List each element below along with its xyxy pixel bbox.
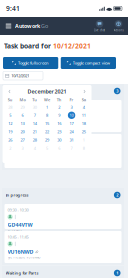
staticText: 2 — [116, 192, 118, 198]
staticText: 30 — [57, 137, 61, 142]
staticText: 22 — [45, 129, 49, 134]
staticText: Th — [57, 97, 62, 102]
staticText: Live chat — [94, 28, 105, 32]
staticText: 09:30 - 10:30 — [7, 207, 28, 212]
staticText: We — [44, 97, 50, 102]
staticText: 3 — [21, 145, 23, 151]
staticText: 21 — [33, 129, 37, 134]
staticText: Autowork — [15, 22, 40, 30]
staticText: Mo — [19, 97, 25, 102]
staticText: 11 — [82, 113, 86, 118]
staticText: 30 — [33, 104, 37, 110]
staticText: 25 — [82, 129, 86, 134]
staticText: 16 — [57, 121, 61, 126]
staticText: Go — [40, 22, 48, 30]
staticText: 10/12/2021 — [53, 42, 91, 50]
staticText: 08:00 - 09:00 — [7, 103, 28, 108]
staticText: 9:41 — [6, 4, 20, 13]
staticText: VU16NWD — [7, 248, 33, 255]
staticText: 4 — [34, 145, 36, 151]
staticText: 24 — [70, 129, 74, 134]
staticText: 10:45 - 11:45 — [7, 234, 28, 239]
staticText: 09:15 - 10:00 — [7, 137, 28, 142]
staticText: 12 — [8, 121, 12, 126]
button[interactable]: Toggle compact view — [61, 57, 116, 69]
staticText: Waiting for Parts — [5, 270, 38, 276]
staticText: 15 — [45, 121, 49, 126]
staticText: Toggle compact view — [73, 60, 110, 66]
staticText: Fit 2x Tyres — [7, 229, 21, 232]
staticText: 6 — [58, 145, 60, 151]
staticText: LR19HXT — [7, 117, 30, 124]
staticText: 27 — [20, 137, 24, 142]
button[interactable]: 10:45 - 11:45 — [4, 231, 121, 263]
staticText: 17 — [70, 121, 74, 126]
button[interactable]: 09:30 - 10:30 — [4, 204, 121, 229]
button[interactable]: Live chat — [90, 17, 109, 35]
staticText: Task board for — [4, 42, 53, 50]
button[interactable]: Actions — [109, 17, 128, 35]
staticText: Fr — [70, 97, 74, 102]
staticText: 3 — [71, 104, 73, 110]
staticText: 31 — [70, 137, 74, 142]
staticText: 14 — [33, 121, 37, 126]
staticText: 7 — [34, 113, 36, 118]
button[interactable]: Menu — [2, 17, 15, 35]
staticText: 1 — [46, 104, 48, 110]
staticText: 5 — [46, 145, 48, 151]
staticText: 1 — [83, 137, 85, 142]
staticText: Su — [8, 97, 13, 102]
staticText: 8 — [83, 145, 85, 151]
staticText: 4 — [83, 104, 85, 110]
staticText: Tyre Pressure VU16NWD — [7, 256, 40, 259]
button[interactable]: Previous month — [5, 87, 13, 95]
staticText: 26 — [8, 137, 12, 142]
staticText: 1 — [116, 270, 118, 276]
staticText: 6 — [21, 113, 23, 118]
staticText: 10/12/2021 — [11, 73, 29, 78]
staticText: In progress — [5, 192, 28, 198]
button[interactable]: Next month — [80, 87, 88, 95]
staticText: 5 — [9, 113, 11, 118]
button[interactable]: 09:15 - 10:00 — [4, 134, 121, 168]
staticText: GD44VTW — [7, 221, 32, 228]
button[interactable]: 08:00 - 09:00 — [4, 100, 121, 132]
staticText: Scheduled — [5, 88, 26, 94]
staticText: 10 — [70, 113, 74, 118]
staticText: 9 — [58, 113, 60, 118]
staticText: Actions — [113, 28, 123, 32]
staticText: 8 — [46, 113, 48, 118]
staticText: December 2021 — [27, 88, 66, 95]
staticText: 2 — [58, 104, 60, 110]
staticText: Sa — [82, 97, 86, 102]
staticText: 3 — [116, 88, 118, 94]
button[interactable]: Toggle fullscreen — [3, 57, 58, 69]
staticText: 29 — [45, 137, 49, 142]
staticText: 20 — [20, 129, 24, 134]
staticText: Tu — [32, 97, 37, 102]
staticText: 29 — [20, 104, 24, 110]
staticText: 19 — [8, 129, 12, 134]
staticText: 13 — [20, 121, 24, 126]
staticText: 18 — [82, 121, 86, 126]
staticText: 7 — [71, 145, 73, 151]
staticText: Toggle fullscreen — [18, 60, 49, 66]
staticText: 28 — [8, 104, 12, 110]
staticText: 23 — [57, 129, 61, 134]
staticText: 28 — [33, 137, 37, 142]
staticText: 2 — [9, 145, 11, 151]
